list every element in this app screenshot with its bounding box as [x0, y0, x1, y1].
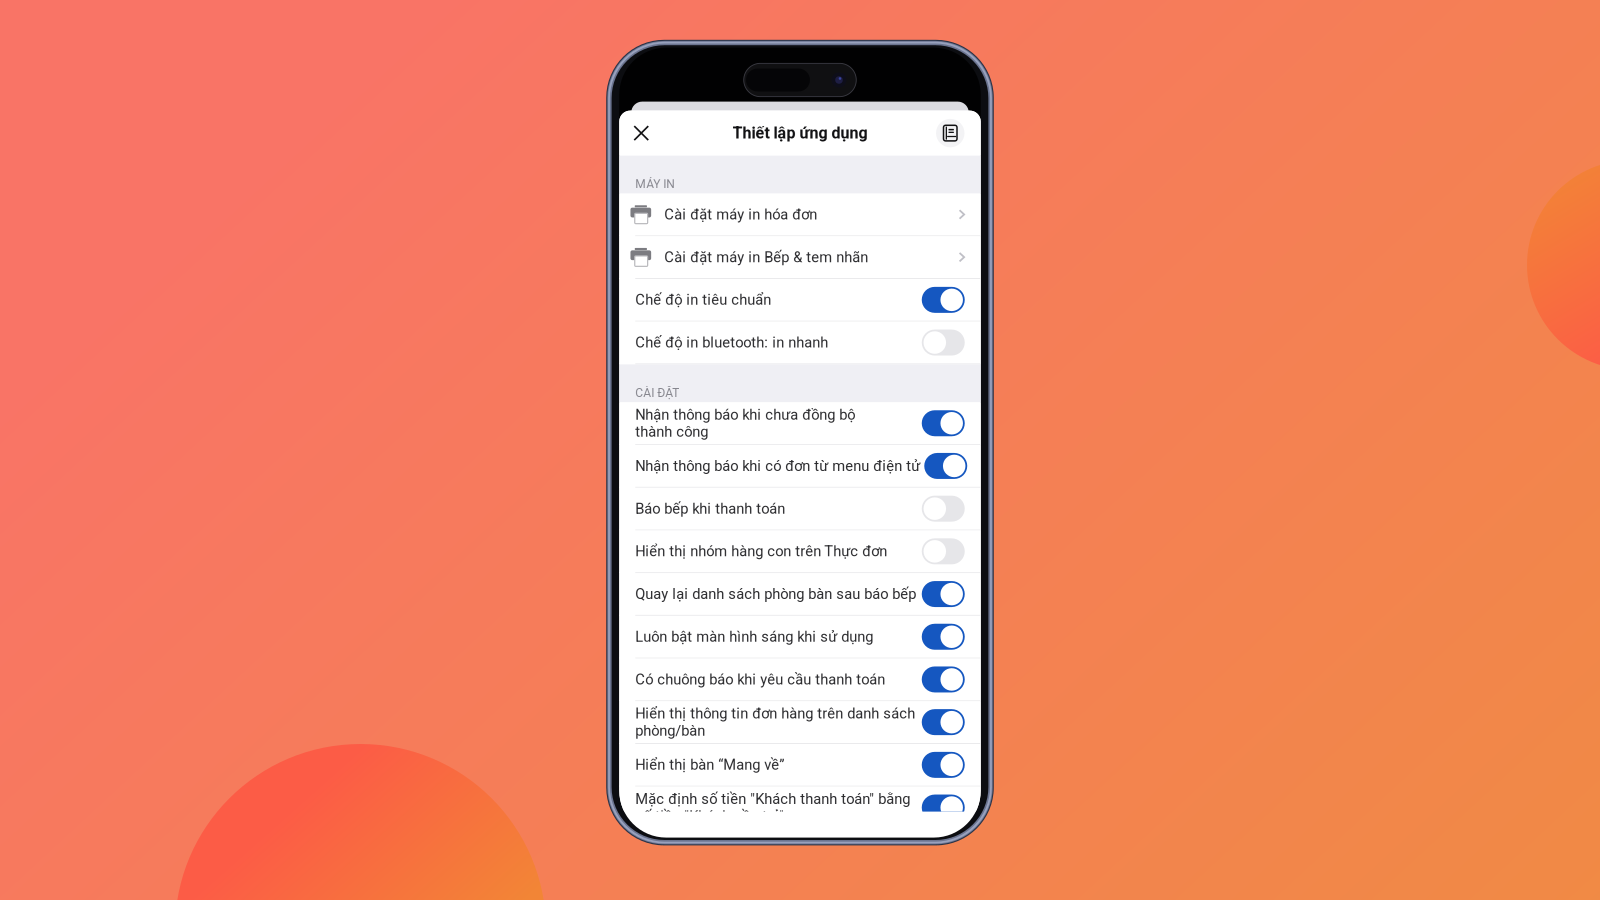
button[interactable]: Quay lại danh sách phòng bàn sau báo bếp: [619, 573, 981, 616]
staticText: Hiển thị bàn “Mang về”: [635, 756, 784, 773]
staticText: CÀI ĐẶT: [635, 386, 679, 400]
button[interactable]: Hiển thị thông tin đơn hàng trên danh sá…: [619, 701, 981, 744]
button[interactable]: Chế độ in tiêu chuẩn: [619, 279, 981, 322]
button[interactable]: Hiển thị nhóm hàng con trên Thực đơn: [619, 530, 981, 573]
staticText: Chế độ in bluetooth: in nhanh: [635, 334, 828, 351]
button[interactable]: Nhận thông báo khi có đơn từ menu điện t…: [619, 445, 981, 488]
button[interactable]: Cài đặt máy in hóa đơn: [619, 194, 981, 236]
button[interactable]: Có chuông báo khi yêu cầu thanh toán: [619, 659, 981, 701]
button[interactable]: Nhận thông báo khi chưa đồng bộ thành cô…: [619, 402, 981, 445]
staticText: Chế độ in tiêu chuẩn: [635, 291, 771, 308]
button[interactable]: Ghi chú: [928, 111, 972, 156]
staticText: Hiển thị nhóm hàng con trên Thực đơn: [635, 543, 887, 560]
staticText: Quay lại danh sách phòng bàn sau báo bếp: [635, 585, 916, 603]
staticText: Cài đặt máy in hóa đơn: [664, 206, 817, 223]
staticText: Có chuông báo khi yêu cầu thanh toán: [635, 671, 885, 688]
button[interactable]: Cài đặt máy in Bếp & tem nhãn: [619, 236, 981, 279]
staticText: Thiết lập ứng dụng: [732, 124, 867, 142]
button[interactable]: Đóng: [619, 111, 663, 156]
staticText: Nhận thông báo khi chưa đồng bộ thành cô…: [635, 406, 855, 440]
staticText: MÁY IN: [635, 177, 675, 191]
staticText: Luôn bật màn hình sáng khi sử dụng: [635, 628, 873, 645]
button[interactable]: Mặc định số tiền "Khách thanh toán" bằng…: [619, 787, 981, 829]
staticText: Nhận thông báo khi có đơn từ menu điện t…: [635, 457, 920, 475]
staticText: Hiển thị thông tin đơn hàng trên danh sá…: [635, 705, 915, 739]
staticText: Mặc định số tiền "Khách thanh toán" bằng…: [635, 790, 910, 825]
button[interactable]: Báo bếp khi thanh toán: [619, 488, 981, 530]
button[interactable]: Hiển thị bàn “Mang về”: [619, 744, 981, 787]
button[interactable]: Chế độ in bluetooth: in nhanh: [619, 322, 981, 364]
staticText: Báo bếp khi thanh toán: [635, 500, 785, 517]
staticText: Cài đặt máy in Bếp & tem nhãn: [664, 249, 868, 266]
button[interactable]: Luôn bật màn hình sáng khi sử dụng: [619, 616, 981, 659]
